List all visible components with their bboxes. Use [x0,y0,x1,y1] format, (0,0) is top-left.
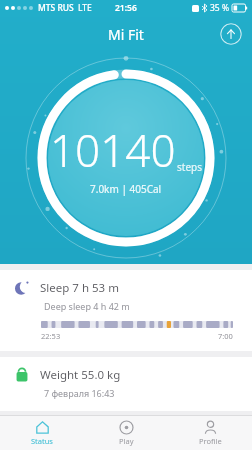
staticText: 22:53 [41,331,61,341]
button[interactable]: Profile [168,417,252,449]
button[interactable]: Status [0,417,84,449]
button[interactable]: Play [84,417,168,449]
staticText: Weight 55.0 kg [40,367,121,383]
staticText: Profile [199,436,222,446]
button[interactable]: 10140 [20,52,232,264]
staticText: Mi Fit [108,25,144,44]
button[interactable]: Share [220,23,242,45]
staticText: MTS RUS [38,2,74,14]
staticText: LTE [78,2,92,14]
staticText: 7 февраля 16:43 [44,387,115,399]
staticText: Status [31,436,53,446]
button[interactable]: Weight 55.0 kg [0,357,252,411]
staticText: 21:56 [115,2,137,14]
staticText: 10140 [50,120,176,180]
staticText: 35 % [210,2,229,14]
staticText: Play [119,436,134,446]
staticText: Deep sleep 4 h 42 m [44,300,130,312]
button[interactable]: Sleep 7 h 53 m [0,270,252,351]
staticText: 7:00 [218,331,233,341]
staticText: 7.0km | 405Cal [90,182,162,196]
staticText: Sleep 7 h 53 m [40,280,119,296]
staticText: steps [177,160,202,174]
